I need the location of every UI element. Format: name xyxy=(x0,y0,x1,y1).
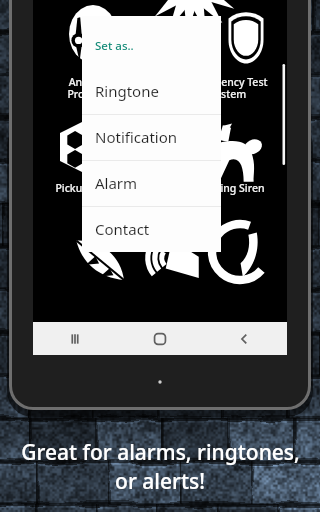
button[interactable]: Emergency Test System xyxy=(183,75,273,101)
staticText: or alerts! xyxy=(115,467,205,496)
button[interactable]: Alarm xyxy=(82,160,221,206)
staticText: Notification xyxy=(95,127,178,147)
button[interactable]: Recent apps xyxy=(33,322,117,355)
button[interactable]: Contact xyxy=(82,206,221,252)
staticText: Contact xyxy=(95,219,150,239)
button[interactable]: Ringtone xyxy=(82,68,221,114)
staticText: Emergency Test System xyxy=(188,75,268,101)
staticText: Pickup Alarm xyxy=(55,181,122,195)
button[interactable]: Air Diving Siren xyxy=(181,181,271,195)
button[interactable]: Notification xyxy=(82,114,221,160)
staticText: Set as.. xyxy=(95,38,134,54)
staticText: Air Diving Siren xyxy=(187,181,265,195)
staticText: Anti-Theft Protection xyxy=(67,75,120,101)
staticText: Ringtone xyxy=(95,81,159,101)
button[interactable]: Anti-Theft Protection xyxy=(48,75,138,101)
button[interactable]: Home xyxy=(117,322,202,355)
button[interactable]: Pickup Alarm xyxy=(43,181,133,195)
staticText: Alarm xyxy=(95,173,138,193)
staticText: Great for alarms, ringtones, xyxy=(21,438,300,467)
button[interactable]: Back xyxy=(202,322,287,355)
